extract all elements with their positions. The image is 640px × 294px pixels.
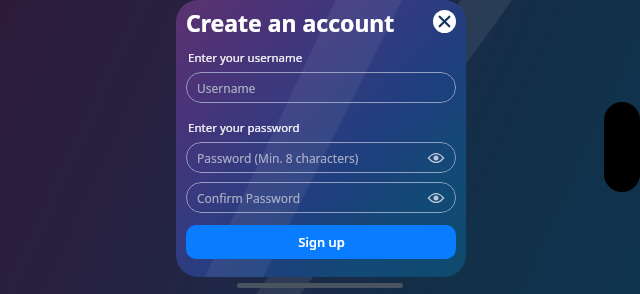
staticText: Confirm Password xyxy=(197,190,427,206)
button[interactable]: Password (Min. 8 characters) xyxy=(186,142,456,173)
staticText: Username xyxy=(197,80,445,96)
staticText: Password (Min. 8 characters) xyxy=(197,150,427,166)
staticText: Enter your password xyxy=(188,120,300,136)
staticText: Create an account xyxy=(186,7,395,38)
button[interactable]: Close xyxy=(433,10,456,33)
button[interactable]: Sign up xyxy=(186,225,456,259)
button[interactable]: Confirm Password xyxy=(186,182,456,213)
button[interactable]: Show password xyxy=(427,149,445,167)
button[interactable]: Username xyxy=(186,72,456,103)
button[interactable]: Show password xyxy=(427,189,445,207)
staticText: Enter your username xyxy=(188,50,303,66)
staticText: Sign up xyxy=(298,233,345,251)
